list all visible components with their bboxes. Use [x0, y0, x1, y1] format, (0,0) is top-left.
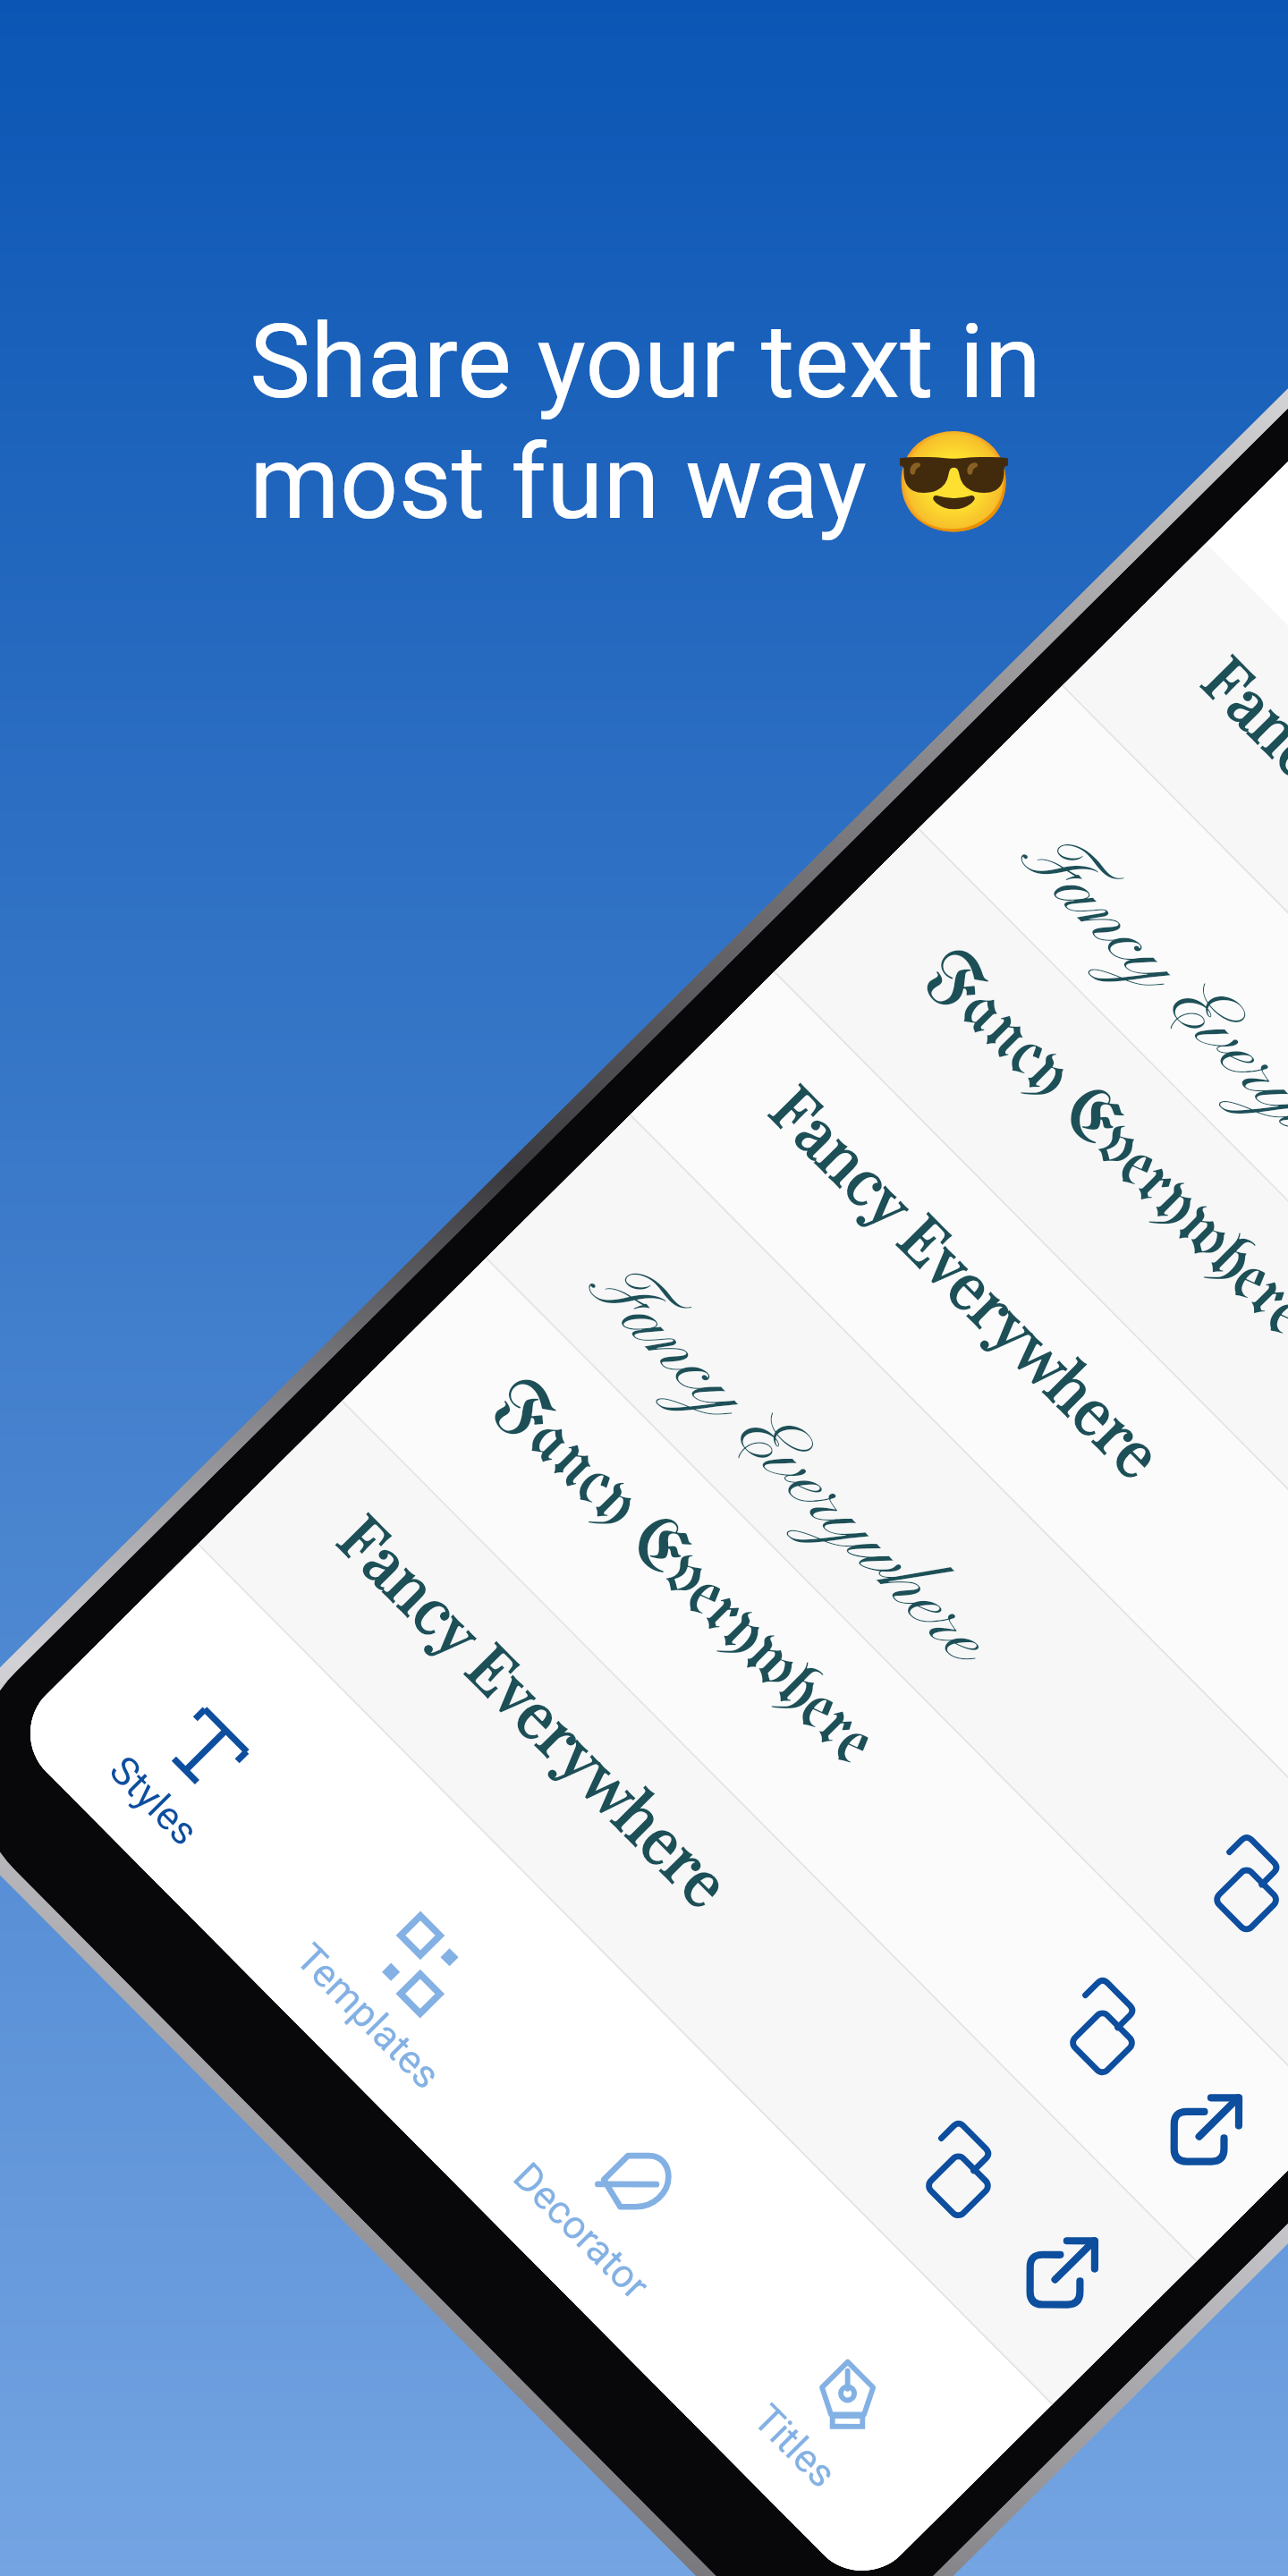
staticText: Fancy Everywhere — [1187, 636, 1288, 1297]
button[interactable]: Fancy Everywhere — [918, 686, 1288, 1690]
button[interactable]: Share — [1155, 2077, 1258, 2181]
staticText: most fun way — [250, 422, 893, 543]
staticText: Share your text in — [250, 301, 1041, 422]
button[interactable]: Copy — [908, 2117, 1009, 2218]
button[interactable]: Copy — [1196, 1831, 1288, 1932]
button[interactable]: Titles — [648, 2261, 981, 2576]
staticText: Templates — [287, 1935, 450, 2098]
staticText: Fancy Everywhere — [755, 1065, 1288, 1726]
staticText: Fancy Everywhere — [564, 1239, 1232, 1911]
staticText: Fancy Everywhere — [996, 810, 1288, 1482]
staticText: Fancy Everywhere — [477, 1368, 1124, 2019]
staticText: 😎 — [893, 425, 1015, 540]
button[interactable]: Fancy Everywhere — [629, 972, 1288, 1976]
button[interactable]: Templates — [221, 1830, 553, 2163]
button[interactable]: Styles — [7, 1615, 340, 1948]
button[interactable]: Fancy Everywhere — [197, 1401, 1196, 2405]
button[interactable]: Copy — [1052, 1974, 1153, 2075]
staticText: Fancy Everywhere — [909, 939, 1288, 1590]
staticText: Fancy Everywhere — [323, 1495, 980, 2155]
button[interactable]: Fancy Everywhere — [341, 1258, 1288, 2262]
button[interactable]: Fancy Everywhere — [773, 829, 1288, 1833]
button[interactable]: Fancy Everywhere — [485, 1115, 1288, 2119]
button[interactable]: Decorator — [435, 2045, 767, 2378]
staticText: Titles — [744, 2395, 846, 2497]
button[interactable]: Fancy Everywhere — [1062, 543, 1288, 1547]
staticText: Decorator — [504, 2153, 659, 2309]
button[interactable]: Share — [1011, 2220, 1114, 2324]
staticText: Styles — [100, 1747, 208, 1855]
